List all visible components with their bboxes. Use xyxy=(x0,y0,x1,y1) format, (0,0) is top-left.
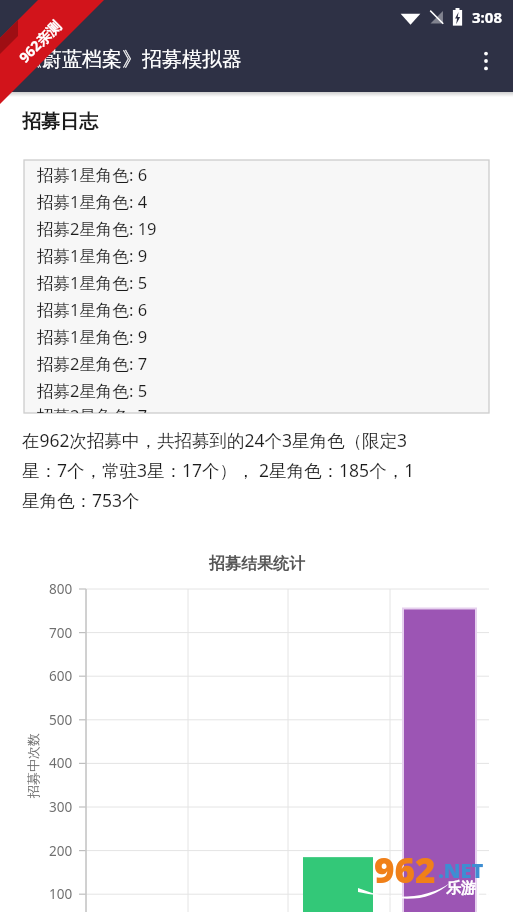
staticText: 招募2星角色: 19 xyxy=(37,217,157,240)
staticText: 星：7个，常驻3星：17个）， 2星角色：185个，1 xyxy=(22,458,415,482)
staticText: 星角色：753个 xyxy=(22,488,140,512)
staticText: 招募1星角色: 9 xyxy=(37,244,148,267)
staticText: 招募日志 xyxy=(22,110,98,134)
staticText: 招募1星角色: 9 xyxy=(37,325,148,348)
staticText: 招募2星角色: 5 xyxy=(37,379,148,402)
staticText: 3:08 xyxy=(472,7,502,27)
staticText: 招募1星角色: 4 xyxy=(37,190,148,213)
staticText: 招募1星角色: 5 xyxy=(37,271,148,294)
staticText: 招募1星角色: 6 xyxy=(37,163,148,186)
staticText: 《蔚蓝档案》招募模拟器 xyxy=(22,47,242,72)
staticText: 招募2星角色: 7 xyxy=(37,352,148,375)
staticText: 招募1星角色: 6 xyxy=(37,298,148,321)
staticText: 招募2星角色: 7 xyxy=(37,404,148,413)
button[interactable]: 招募1星角色: 6 xyxy=(24,160,489,413)
staticText: 在962次招募中，共招募到的24个3星角色（限定3 xyxy=(22,428,408,452)
button[interactable]: More options xyxy=(466,41,506,81)
button[interactable] xyxy=(0,540,513,912)
